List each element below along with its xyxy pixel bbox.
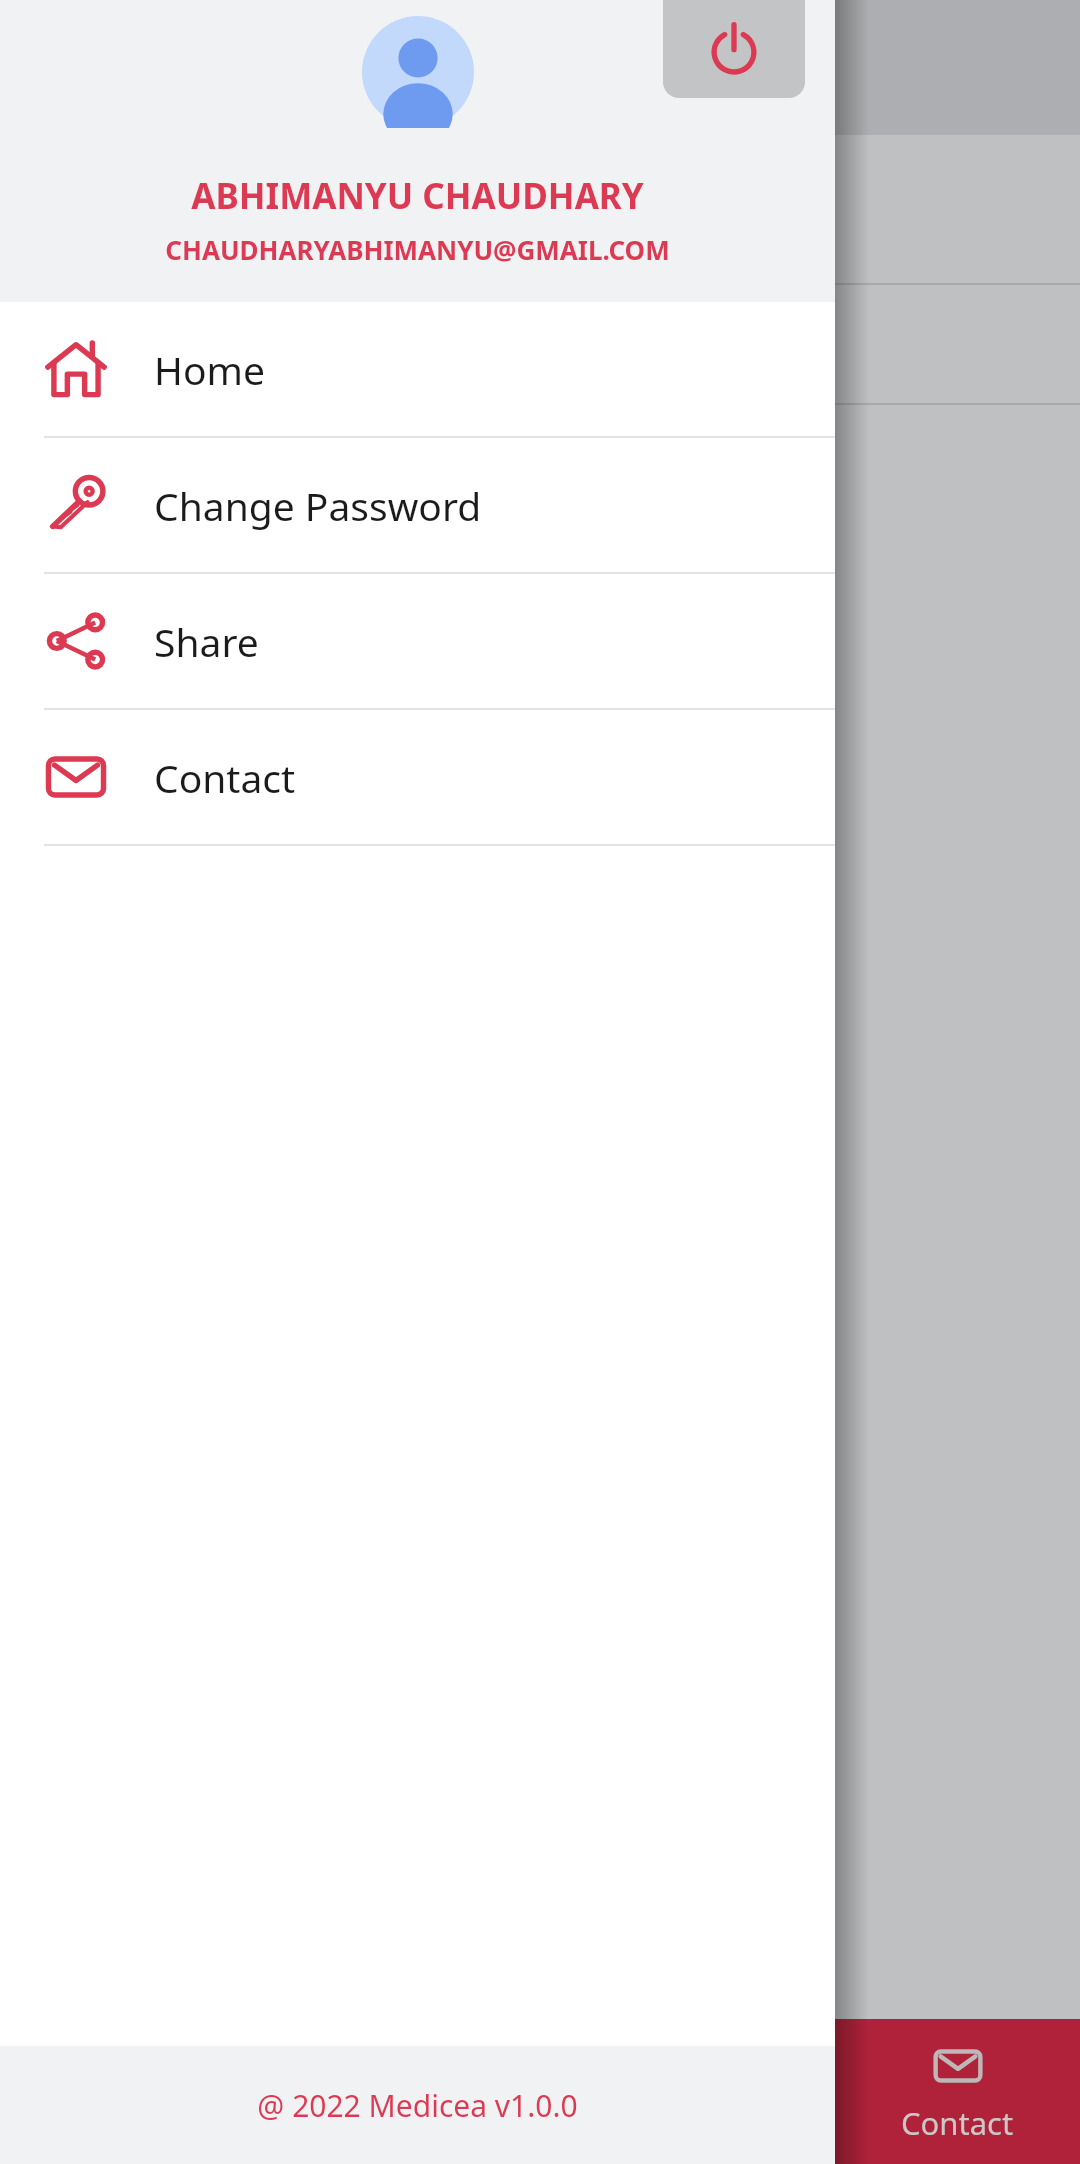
button[interactable]: Contact <box>835 2019 1080 2164</box>
staticText: Share <box>154 615 259 668</box>
staticText: Contact <box>154 751 296 804</box>
staticText: ABHIMANYU CHAUDHARY <box>191 172 644 220</box>
button[interactable]: Contact <box>0 710 835 844</box>
button[interactable]: Log out <box>663 0 805 98</box>
staticText: Home <box>154 343 265 396</box>
button[interactable]: Home <box>0 302 835 436</box>
button[interactable]: Change Password <box>0 438 835 572</box>
button[interactable]: Share <box>0 574 835 708</box>
staticText: Contact <box>901 2102 1014 2144</box>
staticText: @ 2022 Medicea v1.0.0 <box>257 2085 578 2126</box>
staticText: Change Password <box>154 479 482 532</box>
staticText: CHAUDHARYABHIMANYU@GMAIL.COM <box>165 232 670 267</box>
